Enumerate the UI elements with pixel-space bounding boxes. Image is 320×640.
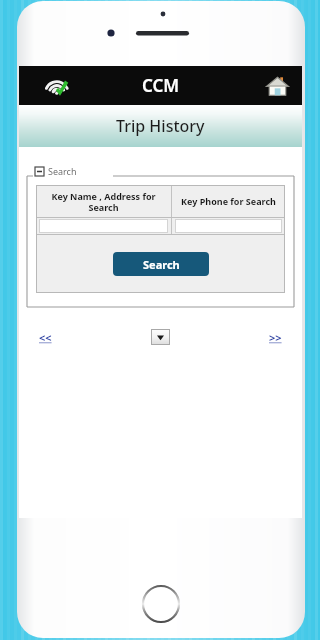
- button[interactable]: Search: [113, 252, 209, 276]
- other: Collapse search: [35, 167, 44, 176]
- staticText: Key Name , Address for Search: [36, 190, 171, 213]
- staticText: Search: [143, 257, 180, 272]
- button[interactable]: [175, 219, 282, 233]
- other: Home button: [141, 584, 181, 624]
- staticText: Key Phone for Search: [181, 195, 276, 207]
- button[interactable]: Home: [262, 71, 292, 101]
- staticText: CCM: [142, 74, 180, 97]
- staticText: Trip History: [116, 115, 205, 137]
- button[interactable]: <<: [37, 328, 54, 347]
- button[interactable]: Wi-Fi connected: [43, 71, 73, 101]
- button[interactable]: >>: [267, 328, 284, 347]
- staticText: >>: [269, 330, 282, 345]
- staticText: Search: [48, 165, 77, 177]
- staticText: <<: [39, 330, 52, 345]
- button[interactable]: Rows per page: [151, 329, 170, 345]
- button[interactable]: [39, 219, 168, 233]
- button[interactable]: Collapse search: [35, 165, 77, 177]
